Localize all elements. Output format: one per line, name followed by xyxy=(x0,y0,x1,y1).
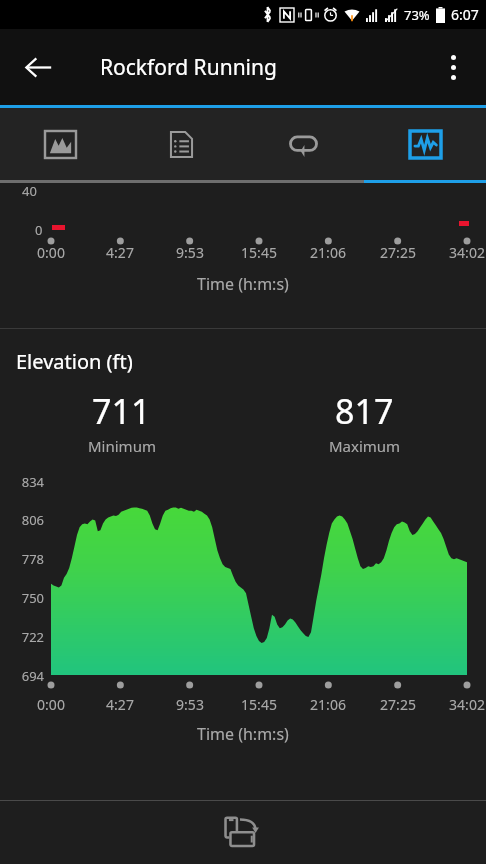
staticText: Minimum xyxy=(88,436,156,456)
staticText: Rockford Running xyxy=(100,53,277,82)
staticText: 4:27 xyxy=(97,695,143,714)
staticText: 694 xyxy=(0,667,44,685)
staticText: 40 xyxy=(22,182,37,200)
staticText: 27:25 xyxy=(375,243,421,262)
staticText: 750 xyxy=(0,589,44,607)
staticText: 6:07 xyxy=(451,5,479,24)
staticText: 21:06 xyxy=(305,243,351,262)
staticText: 0 xyxy=(35,221,43,239)
staticText: 34:02 xyxy=(444,695,486,714)
staticText: 778 xyxy=(0,550,44,568)
staticText: Time (h:m:s) xyxy=(197,723,289,745)
staticText: 9:53 xyxy=(167,695,213,714)
staticText: 711 xyxy=(92,388,151,434)
staticText: 0:00 xyxy=(28,243,74,262)
staticText: Time (h:m:s) xyxy=(197,273,289,295)
staticText: 0:00 xyxy=(28,695,74,714)
staticText: 9:53 xyxy=(167,243,213,262)
staticText: 27:25 xyxy=(375,695,421,714)
staticText: 15:45 xyxy=(236,243,282,262)
button[interactable]: Laps xyxy=(242,108,364,180)
staticText: 722 xyxy=(0,628,44,646)
staticText: 21:06 xyxy=(305,695,351,714)
button[interactable]: Charts xyxy=(364,108,486,180)
staticText: 806 xyxy=(0,511,44,529)
staticText: 817 xyxy=(335,388,394,434)
staticText: 15:45 xyxy=(236,695,282,714)
staticText: 4:27 xyxy=(97,243,143,262)
button[interactable]: More options xyxy=(428,42,478,92)
staticText: 834 xyxy=(0,473,44,491)
button[interactable]: Map xyxy=(0,108,121,180)
button[interactable]: Back xyxy=(12,41,64,93)
staticText: 73% xyxy=(404,6,430,24)
button[interactable]: Rotate screen xyxy=(215,805,271,861)
button[interactable]: Details xyxy=(121,108,242,180)
staticText: Elevation (ft) xyxy=(16,348,133,375)
staticText: Maximum xyxy=(329,436,401,456)
staticText: 34:02 xyxy=(444,243,486,262)
